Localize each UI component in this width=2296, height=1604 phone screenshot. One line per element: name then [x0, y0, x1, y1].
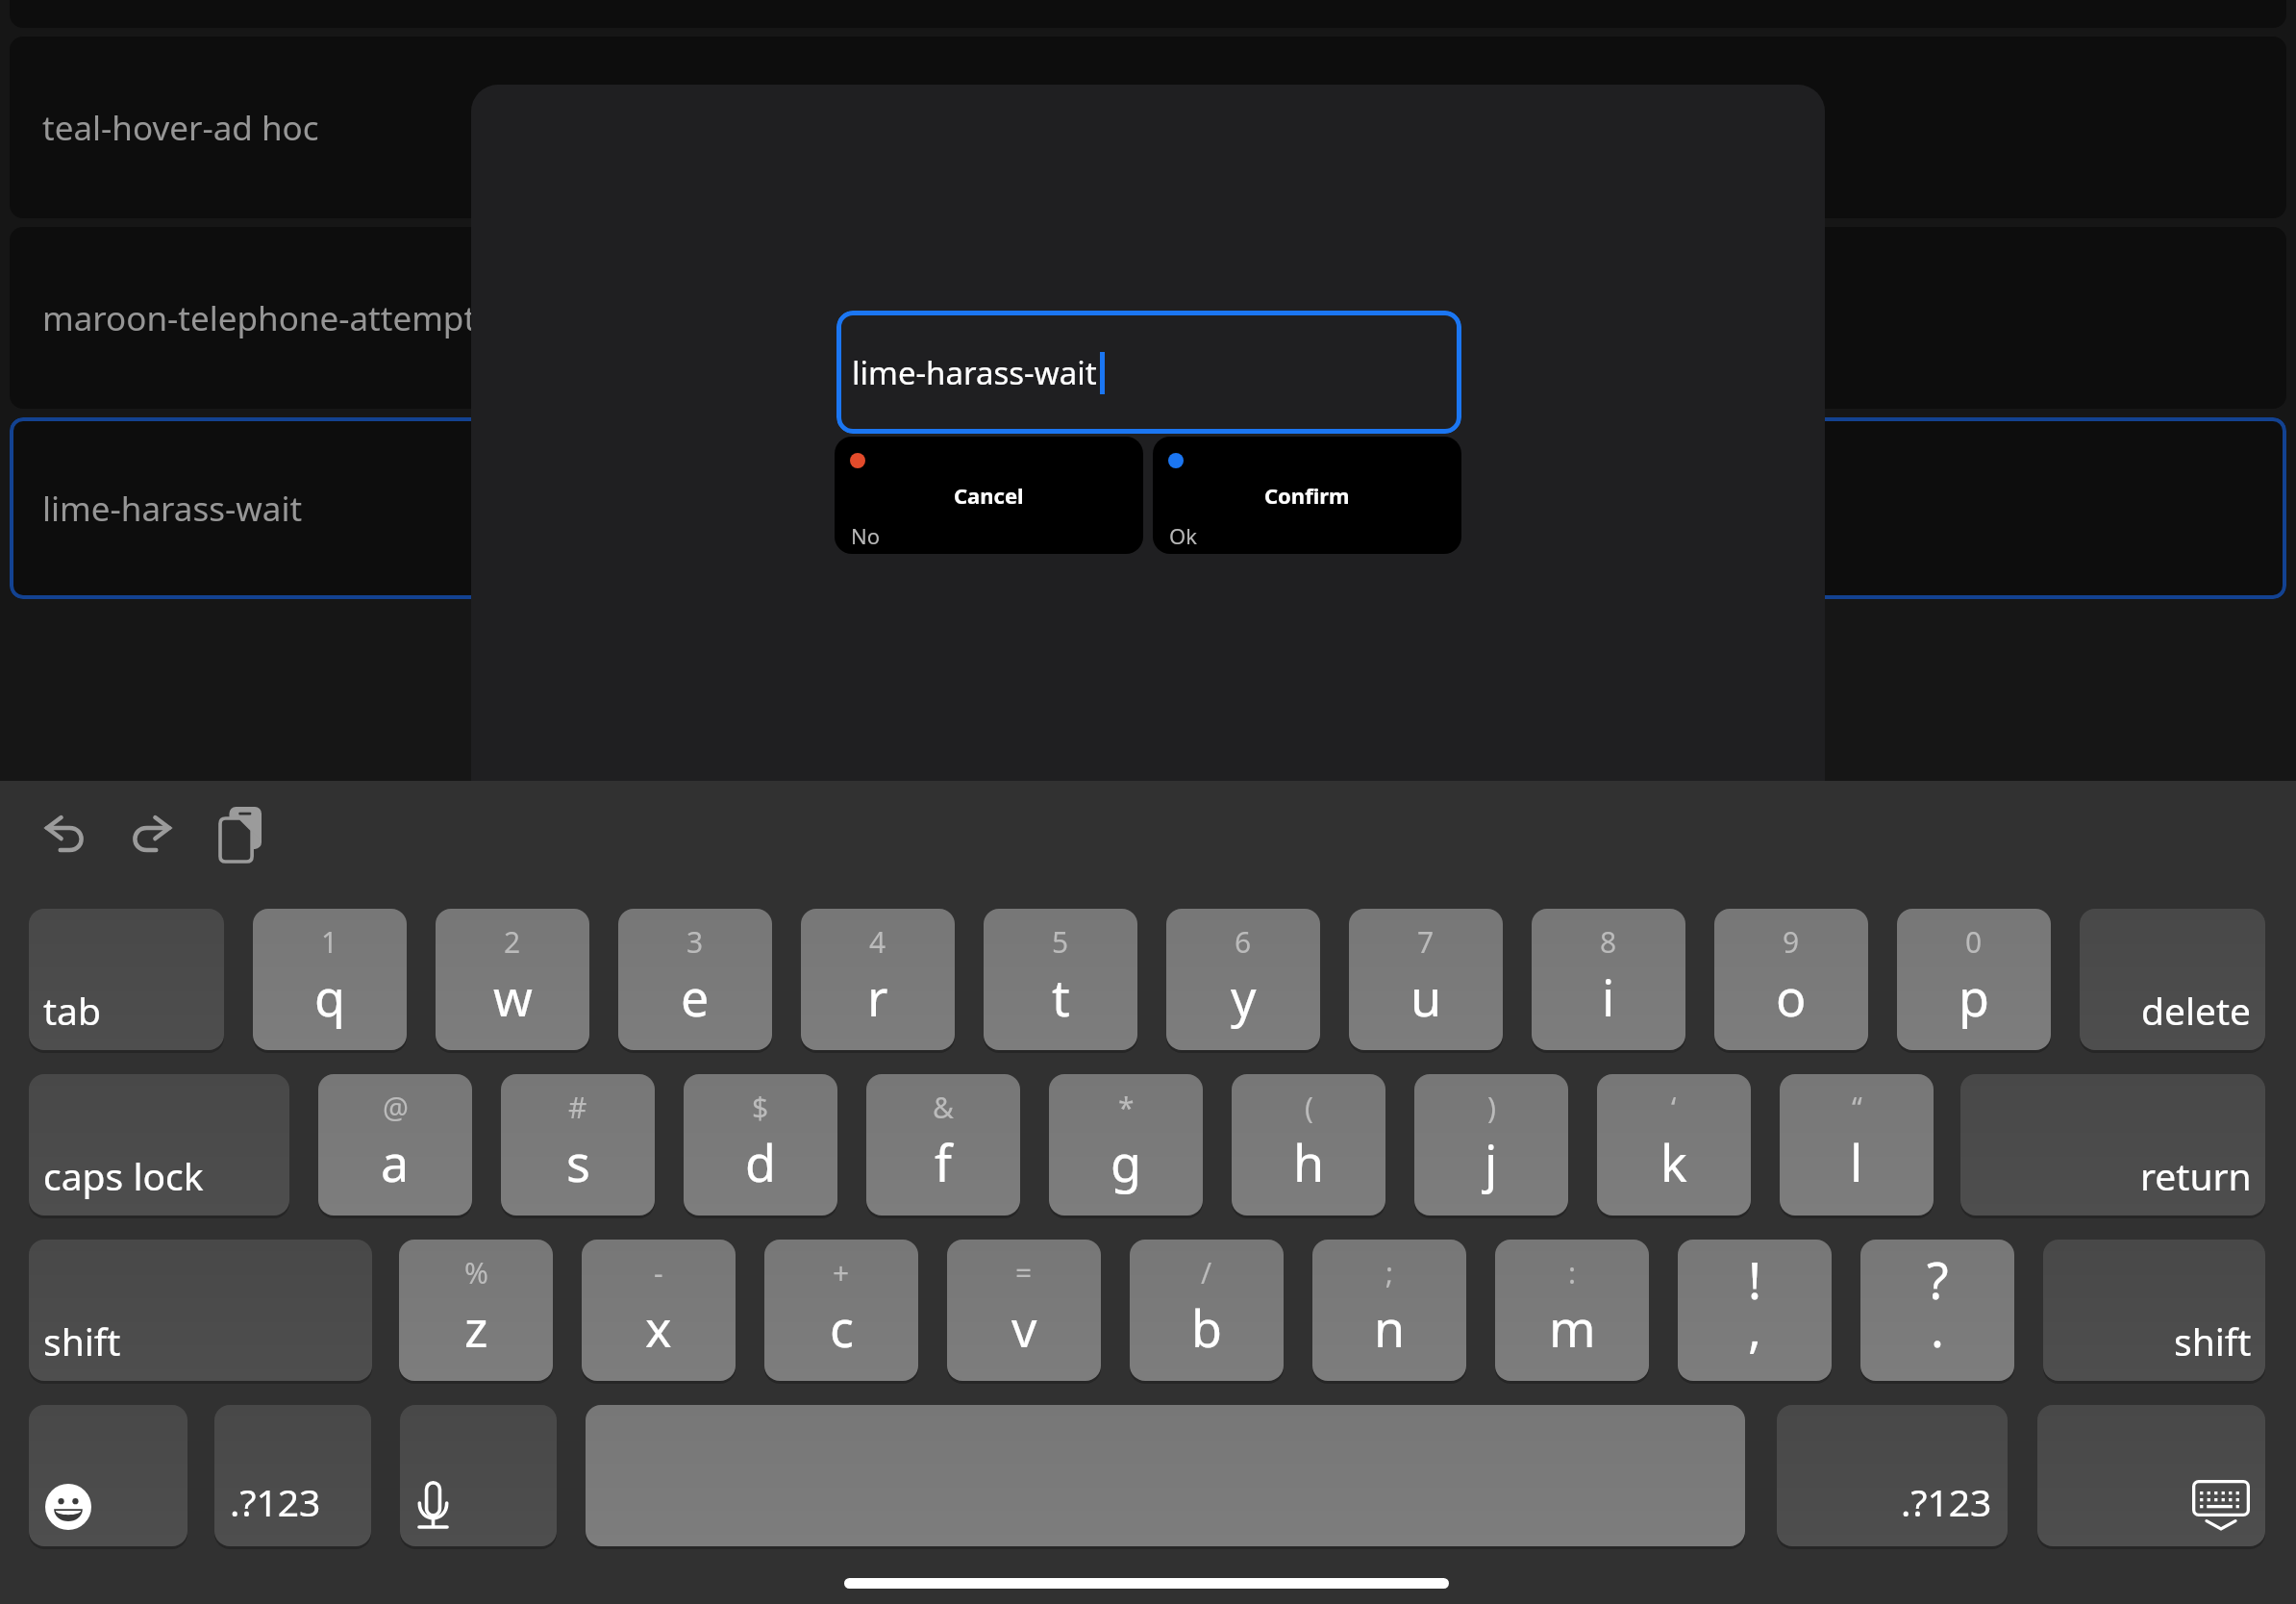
button[interactable]: Emoji [29, 1405, 187, 1546]
staticText: s [566, 1128, 590, 1196]
button[interactable]: # [501, 1074, 655, 1216]
staticText: a [381, 1128, 410, 1196]
button[interactable]: .?123 [1777, 1405, 2008, 1546]
staticText: 6 [1235, 922, 1252, 962]
staticText: Ok [1169, 521, 1197, 550]
staticText: ! [1748, 1245, 1761, 1314]
button[interactable]: maroon-telephone-attempt [10, 227, 2286, 409]
button[interactable]: 0 [1897, 909, 2051, 1050]
button[interactable]: + [764, 1240, 918, 1381]
staticText: 4 [869, 922, 886, 962]
button[interactable]: .?123 [214, 1405, 371, 1546]
button[interactable]: % [399, 1240, 553, 1381]
staticText: 9 [1783, 922, 1800, 962]
staticText: g [1111, 1128, 1141, 1196]
button[interactable]: Confirm [1153, 437, 1461, 554]
button[interactable]: / [1130, 1240, 1284, 1381]
button[interactable]: 8 [1532, 909, 1685, 1050]
button[interactable]: Paste [220, 807, 262, 862]
button[interactable]: caps lock [29, 1074, 289, 1216]
staticText: 1 [321, 922, 338, 962]
staticText: ( [1305, 1088, 1313, 1127]
button[interactable]: Cancel [835, 437, 1143, 554]
staticText: 8 [1600, 922, 1617, 962]
staticText: No [851, 521, 881, 550]
button[interactable]: Hide keyboard [2037, 1405, 2265, 1546]
button[interactable]: : [1495, 1240, 1649, 1381]
button[interactable]: Dictate [400, 1405, 557, 1546]
button[interactable]: delete [2080, 909, 2265, 1050]
staticText: shift [2174, 1316, 2252, 1366]
staticText: * [1118, 1088, 1135, 1127]
staticText: = [1015, 1253, 1033, 1292]
button[interactable]: 1 [253, 909, 407, 1050]
staticText: p [1959, 963, 1989, 1031]
staticText: 0 [1965, 922, 1983, 962]
staticText: ‘ [1671, 1088, 1677, 1127]
button[interactable]: ‘ [1597, 1074, 1751, 1216]
button[interactable]: return [1960, 1074, 2265, 1216]
button[interactable]: 4 [801, 909, 955, 1050]
staticText: e [681, 963, 710, 1031]
staticText: & [933, 1088, 954, 1127]
staticText: h [1293, 1128, 1325, 1196]
staticText: - [654, 1253, 663, 1292]
button[interactable]: 7 [1349, 909, 1503, 1050]
button[interactable]: 9 [1714, 909, 1868, 1050]
staticText: teal-hover-ad hoc [42, 105, 319, 151]
staticText: v [1011, 1293, 1037, 1362]
button[interactable]: @ [318, 1074, 472, 1216]
staticText: u [1410, 963, 1442, 1031]
staticText: ? [1927, 1245, 1949, 1314]
button[interactable]: 3 [618, 909, 772, 1050]
staticText: 7 [1417, 922, 1435, 962]
button[interactable]: = [947, 1240, 1101, 1381]
button[interactable]: ; [1312, 1240, 1466, 1381]
staticText: shift [43, 1316, 121, 1366]
staticText: Confirm [1264, 481, 1350, 510]
staticText: tab [43, 985, 101, 1036]
staticText: t [1052, 963, 1070, 1031]
button[interactable]: 2 [436, 909, 589, 1050]
button[interactable]: teal-hover-ad hoc [10, 37, 2286, 218]
button[interactable]: shift [2043, 1240, 2265, 1381]
button[interactable]: Undo [44, 811, 87, 853]
staticText: lime-harass-wait [852, 351, 1097, 394]
button[interactable]: ( [1232, 1074, 1385, 1216]
button[interactable]: ) [1414, 1074, 1568, 1216]
button[interactable]: shift [29, 1240, 372, 1381]
staticText: b [1191, 1293, 1222, 1362]
button[interactable]: lime-harass-wait [10, 417, 2286, 599]
staticText: , [1748, 1293, 1761, 1362]
staticText: $ [752, 1088, 769, 1127]
button[interactable]: tab [29, 909, 224, 1050]
staticText: c [830, 1293, 854, 1362]
staticText: 3 [686, 922, 704, 962]
staticText: z [464, 1293, 488, 1362]
button[interactable]: 5 [984, 909, 1137, 1050]
button[interactable]: 6 [1166, 909, 1320, 1050]
staticText: . [1931, 1293, 1944, 1362]
staticText: q [314, 963, 345, 1031]
staticText: k [1660, 1128, 1687, 1196]
staticText: “ [1852, 1088, 1862, 1127]
staticText: / [1201, 1253, 1212, 1292]
staticText: j [1485, 1128, 1498, 1196]
staticText: delete [2141, 985, 2252, 1036]
staticText: l [1850, 1128, 1863, 1196]
button[interactable]: $ [684, 1074, 837, 1216]
button[interactable]: lime-harass-wait [836, 311, 1461, 434]
button[interactable]: - [582, 1240, 736, 1381]
button[interactable]: & [866, 1074, 1020, 1216]
button[interactable]: ! [1678, 1240, 1832, 1381]
staticText: Cancel [954, 481, 1024, 510]
staticText: maroon-telephone-attempt [42, 295, 477, 341]
staticText: ; [1385, 1253, 1394, 1292]
button[interactable]: * [1049, 1074, 1203, 1216]
button[interactable]: “ [1780, 1074, 1934, 1216]
button[interactable]: Redo [130, 811, 172, 853]
button[interactable]: ? [1860, 1240, 2014, 1381]
staticText: .?123 [1901, 1476, 1992, 1527]
